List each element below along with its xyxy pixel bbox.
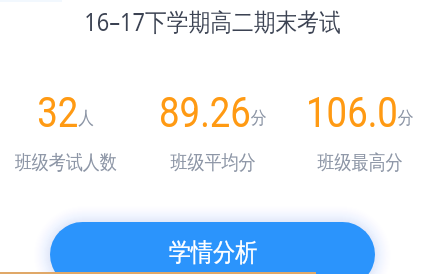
button[interactable]: 学情分析 <box>50 222 375 274</box>
staticText: 学情分析 <box>169 236 257 268</box>
staticText: 89.26分 <box>159 88 267 137</box>
staticText: 班级考试人数 <box>15 150 117 175</box>
staticText: 班级平均分 <box>170 150 256 175</box>
staticText: 106.0分 <box>306 88 414 137</box>
staticText: 16–17下学期高二期末考试 <box>84 4 341 38</box>
staticText: 32人 <box>37 88 95 137</box>
staticText: 班级最高分 <box>317 150 403 175</box>
